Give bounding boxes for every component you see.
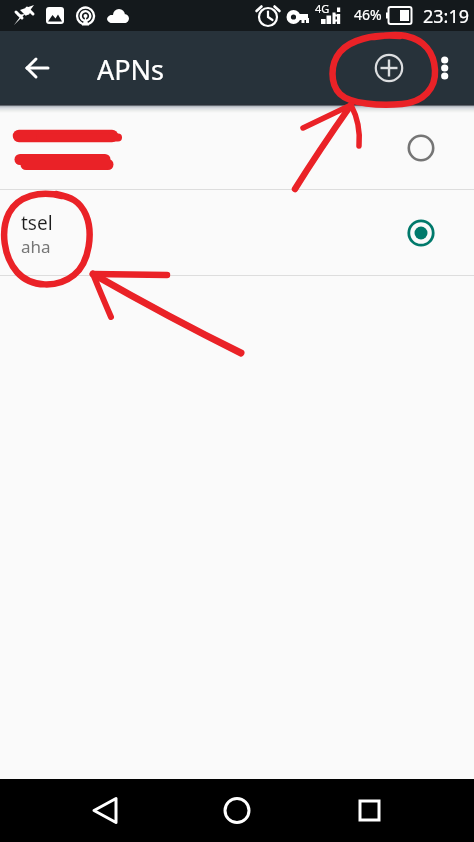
staticText: 23:19 — [423, 4, 470, 29]
button[interactable]: Back — [13, 44, 61, 92]
staticText: APNs — [97, 51, 165, 88]
button[interactable]: Home — [200, 786, 274, 835]
staticText: aha — [21, 235, 51, 258]
staticText: 46% — [354, 5, 382, 24]
button[interactable]: More options — [425, 44, 465, 92]
button[interactable]: tsel — [0, 190, 474, 275]
button[interactable]: Back — [68, 786, 142, 835]
button[interactable]: Add APN — [365, 44, 413, 92]
button[interactable]: Recent apps — [332, 786, 406, 835]
staticText: tsel — [21, 210, 53, 236]
button[interactable]: Select APN — [0, 113, 474, 189]
staticText: 4G — [315, 1, 330, 16]
other: APN tsel selected — [397, 209, 444, 256]
other: Select APN — [397, 124, 444, 171]
